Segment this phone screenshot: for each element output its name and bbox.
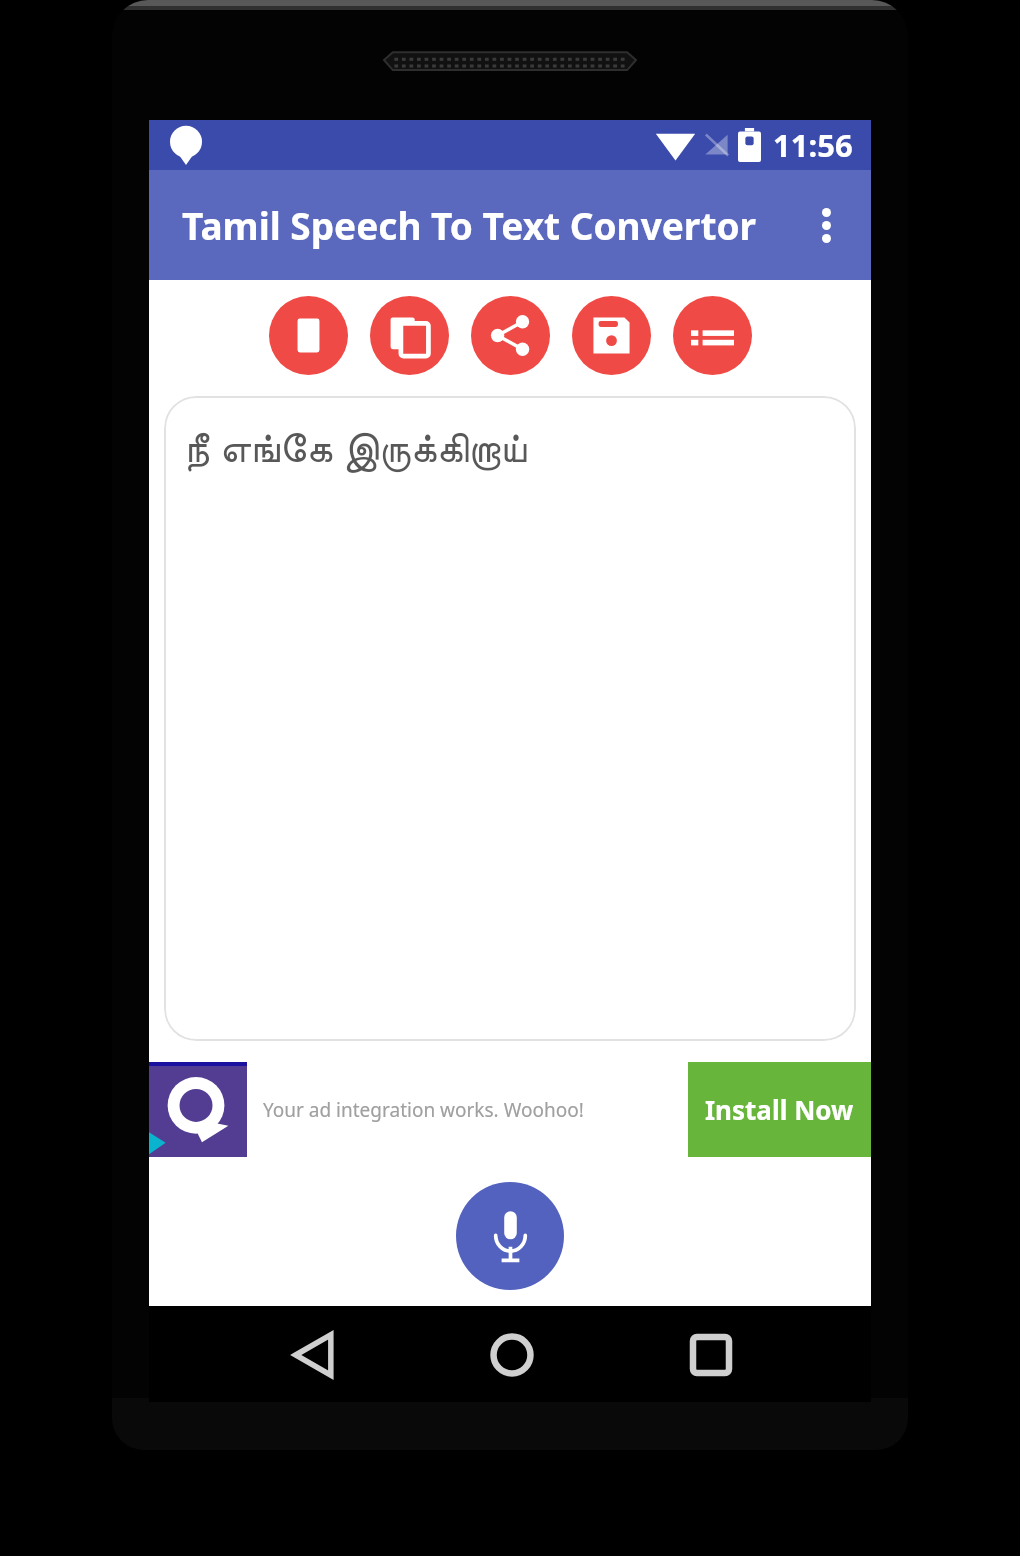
button[interactable]: Delete — [269, 296, 348, 375]
staticText: நீ எங்கே இருக்கிறாய் — [184, 418, 527, 474]
button[interactable]: Save — [572, 296, 651, 375]
staticText: Install Now — [705, 1092, 854, 1127]
button[interactable]: List — [673, 296, 752, 375]
button[interactable]: Share — [471, 296, 550, 375]
button[interactable]: Back — [277, 1317, 353, 1393]
staticText: 11:56 — [773, 124, 853, 166]
button[interactable]: Home — [474, 1317, 550, 1393]
staticText: Tamil Speech To Text Convertor — [182, 200, 757, 250]
staticText: Your ad integration works. Woohoo! — [263, 1097, 584, 1123]
button[interactable]: More options — [798, 197, 854, 253]
button[interactable]: நீ எங்கே இருக்கிறாய் — [164, 396, 856, 1041]
button[interactable]: Copy — [370, 296, 449, 375]
button[interactable]: Install Now — [688, 1062, 871, 1157]
button[interactable]: Recents — [673, 1317, 749, 1393]
button[interactable]: Start speech recognition — [456, 1182, 564, 1290]
